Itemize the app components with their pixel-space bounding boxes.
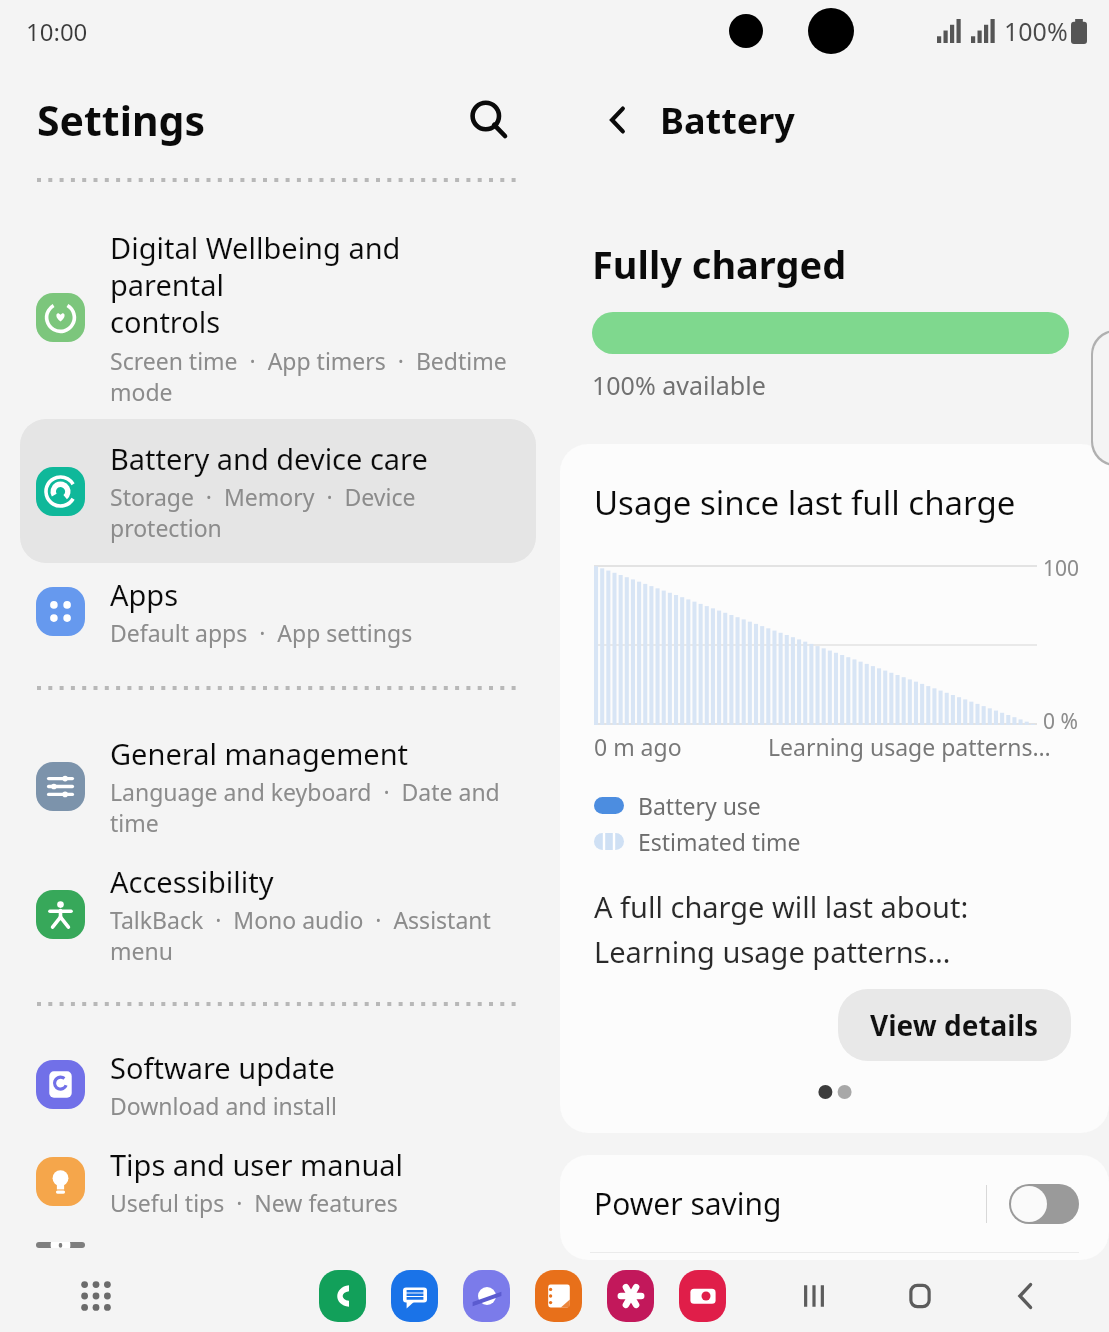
button[interactable]: Back	[590, 92, 646, 148]
button[interactable]: Apps	[20, 563, 536, 660]
staticText: 0 m ago	[594, 731, 682, 762]
button[interactable]: Digital Wellbeing and parental controls	[20, 216, 536, 419]
button[interactable]: Search	[458, 89, 520, 151]
staticText: Battery	[660, 96, 795, 145]
staticText: Apps	[110, 575, 179, 614]
staticText: Power saving	[594, 1183, 782, 1224]
staticText: Tips and user manual	[110, 1145, 404, 1184]
button[interactable]: Apps	[72, 1272, 120, 1320]
staticText: Accessibility	[110, 862, 274, 901]
staticText: Estimated time	[638, 826, 801, 857]
staticText: View details	[870, 1006, 1039, 1044]
staticText: Fully charged	[592, 238, 847, 290]
staticText: 0 %	[1043, 707, 1078, 736]
staticText: Software update	[110, 1048, 335, 1087]
staticText: General management	[110, 734, 409, 773]
staticText: A full charge will last about:	[594, 887, 969, 926]
button[interactable]: Power saving toggle	[1009, 1184, 1079, 1224]
button[interactable]: Back	[1003, 1273, 1049, 1319]
button[interactable]: flower	[607, 1270, 654, 1322]
staticText: 100% available	[592, 368, 766, 402]
staticText: Download and install	[110, 1090, 337, 1121]
staticText: Digital Wellbeing and parental controls	[110, 228, 520, 342]
staticText: 100	[1043, 554, 1080, 583]
staticText: Language and keyboard · Date and time	[110, 776, 520, 838]
button[interactable]: internet	[463, 1270, 510, 1322]
staticText: Screen time · App timers · Bedtime mode	[110, 345, 520, 407]
staticText: TalkBack · Mono audio · Assistant menu	[110, 904, 520, 966]
button[interactable]: Battery and device care	[20, 419, 536, 563]
staticText: Learning usage patterns…	[594, 932, 951, 971]
button[interactable]: Recents	[791, 1273, 837, 1319]
button[interactable]: Home	[897, 1273, 943, 1319]
staticText: Settings	[37, 92, 206, 148]
staticText: Battery use	[638, 790, 761, 821]
button[interactable]: camera	[679, 1270, 726, 1322]
button[interactable]: notes	[535, 1270, 582, 1322]
button[interactable]: Tips and user manual	[20, 1133, 536, 1230]
button[interactable]: msg	[391, 1270, 438, 1322]
button[interactable]: phone	[319, 1270, 366, 1322]
staticText: Storage · Memory · Device protection	[110, 481, 520, 543]
staticText: Learning usage patterns…	[768, 731, 1051, 762]
button[interactable]: General management	[20, 722, 536, 850]
staticText: Usage since last full charge	[594, 480, 1016, 525]
button[interactable]: About phone	[20, 1230, 536, 1260]
button[interactable]: View details	[838, 989, 1071, 1061]
button[interactable]: Accessibility	[20, 850, 536, 978]
button[interactable]: Software update	[20, 1036, 536, 1133]
button[interactable]: Power saving	[560, 1155, 1109, 1252]
staticText: 10:00	[26, 15, 88, 48]
staticText: Useful tips · New features	[110, 1187, 398, 1218]
staticText: Battery and device care	[110, 439, 428, 478]
staticText: Default apps · App settings	[110, 617, 413, 648]
staticText: 100%	[1004, 14, 1068, 48]
